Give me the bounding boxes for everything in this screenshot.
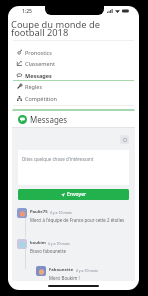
- staticText: 1:25: [22, 8, 32, 15]
- button[interactable]: Envoyer: [18, 189, 129, 200]
- staticText: il y a 10 mois: [76, 268, 98, 273]
- staticText: Compétition: [25, 95, 57, 102]
- staticText: Merci Boukim !: [49, 275, 80, 281]
- staticText: boukim: [30, 240, 46, 246]
- staticText: il y a 10 mois: [50, 210, 72, 215]
- button[interactable]: Dites quelque chose d'intéressant: [18, 150, 129, 185]
- staticText: Bravo fabounette: [30, 248, 66, 254]
- staticText: Règles: [25, 83, 43, 90]
- staticText: Dites quelque chose d'intéressant: [22, 156, 94, 162]
- button[interactable]: Paulie75: [17, 208, 131, 223]
- staticText: Messages: [25, 72, 52, 79]
- staticText: Envoyer: [67, 191, 87, 198]
- button[interactable]: Messages: [8, 69, 139, 81]
- button[interactable]: Fabounette: [36, 266, 131, 281]
- staticText: Merci à l'équipe de France pour cette 2 …: [30, 217, 125, 223]
- staticText: il y a 10 mois: [48, 241, 70, 246]
- button[interactable]: Règles: [8, 81, 139, 92]
- staticText: Classement: [25, 60, 55, 67]
- button[interactable]: Pronostics: [8, 46, 139, 58]
- staticText: Messages: [30, 114, 68, 125]
- button[interactable]: Compétition: [8, 92, 139, 104]
- staticText: Paulie75: [30, 209, 48, 215]
- staticText: Coupe du monde de football 2018: [11, 18, 100, 39]
- staticText: Fabounette: [49, 267, 74, 273]
- button[interactable]: Insert emoji: [120, 135, 129, 144]
- staticText: Pronostics: [25, 49, 52, 56]
- button[interactable]: Classement: [8, 58, 139, 69]
- button[interactable]: boukim: [17, 239, 131, 254]
